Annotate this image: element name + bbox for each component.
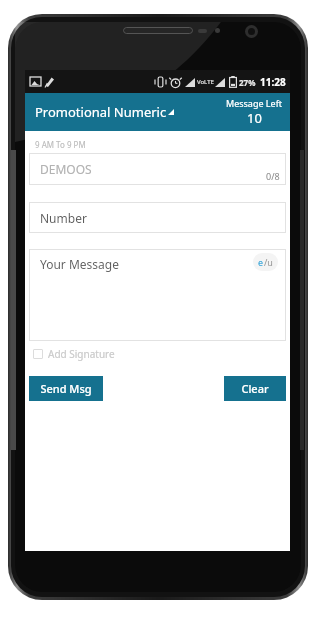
- staticText: 27%: [239, 77, 256, 88]
- button[interactable]: DEMOOS: [29, 153, 286, 185]
- button[interactable]: Send Msg: [29, 376, 103, 401]
- staticText: Number: [40, 210, 87, 226]
- staticText: Send Msg: [40, 381, 92, 396]
- staticText: Message Left: [226, 97, 282, 109]
- staticText: Clear: [241, 381, 269, 396]
- staticText: 10: [247, 109, 262, 127]
- staticText: VoLTE: [197, 78, 214, 86]
- staticText: 9 AM To 9 PM: [35, 139, 86, 150]
- button[interactable]: Add Signature: [29, 345, 121, 363]
- staticText: Add Signature: [48, 347, 115, 361]
- button[interactable]: Clear: [224, 376, 286, 401]
- staticText: /u: [264, 256, 273, 268]
- staticText: e: [258, 256, 264, 268]
- button[interactable]: Number: [29, 202, 286, 233]
- button[interactable]: Encoding e or u: [253, 253, 278, 271]
- staticText: 11:28: [260, 75, 286, 89]
- staticText: DEMOOS: [40, 161, 92, 177]
- staticText: Your Message: [40, 256, 119, 272]
- staticText: Promotional Numeric: [35, 103, 167, 121]
- staticText: 0/8: [266, 170, 280, 182]
- button[interactable]: Your Message: [29, 249, 286, 341]
